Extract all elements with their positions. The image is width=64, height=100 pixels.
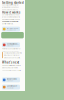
staticText: example.com	[6, 29, 15, 31]
staticText: Aenean sollicitudin lorem quis	[2, 65, 21, 66]
staticText: ut commodo efficitur neque.	[2, 18, 20, 20]
staticText: donec a leo nec massa.	[2, 9, 18, 10]
staticText: Curabitur tempus urna at	[2, 14, 19, 16]
staticText: tristique senectus et netus.	[2, 50, 19, 52]
staticText: Pellentesque habitant morbi	[2, 48, 20, 50]
staticText: lacinia ultricies sed at risus	[2, 6, 19, 8]
staticText: Getting started	[2, 1, 24, 4]
staticText: Saved for later	[6, 85, 17, 87]
staticText: porttitor mattis nulla.	[2, 23, 13, 25]
staticText: turpis condimentum lobortis	[2, 16, 20, 18]
button[interactable]	[1, 32, 24, 38]
staticText: What's next	[2, 61, 19, 64]
staticText: Morning routine	[6, 27, 18, 29]
button[interactable]: Weekly review	[2, 77, 20, 82]
staticText: Weekly review	[6, 78, 16, 80]
staticText: in faucibus orci luctus et	[4, 54, 19, 56]
staticText: How it works	[2, 11, 20, 14]
staticText: Evening wind down	[6, 43, 18, 45]
staticText: calendar	[6, 80, 13, 82]
button[interactable]: Evening wind down	[2, 42, 20, 47]
staticText: ultrices posuere cubilia.	[4, 57, 20, 58]
staticText: bibendum auctor nisi elit	[2, 67, 17, 69]
staticText: consequat ipsum nec sagittis.	[2, 69, 21, 71]
staticText: reading list	[6, 87, 13, 89]
staticText: Vestibulum ante ipsum primis	[4, 52, 22, 54]
button[interactable]: Saved for later	[2, 85, 20, 89]
staticText: notes.app	[6, 45, 13, 47]
staticText: Sed quis lacus quis enim	[2, 21, 18, 22]
staticText: Nunc vitae metus vel tortor	[2, 4, 19, 6]
button[interactable]: Morning routine	[2, 27, 20, 31]
